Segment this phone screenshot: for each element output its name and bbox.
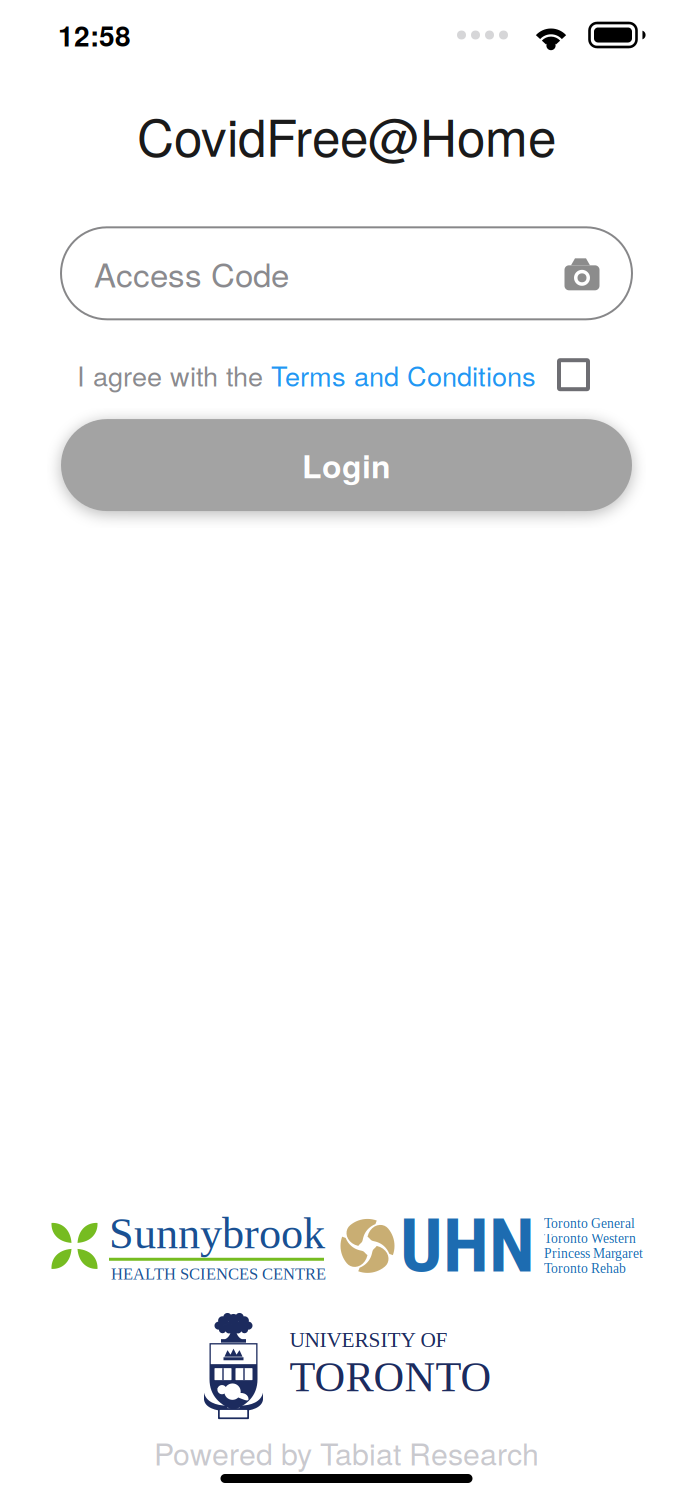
staticText: Powered by Tabiat Research <box>154 1431 539 1474</box>
staticText: Toronto Rehab <box>544 1261 626 1276</box>
staticText: Terms and Conditions <box>271 355 536 394</box>
staticText: HEALTH SCIENCES CENTRE <box>111 1265 326 1283</box>
staticText: Princess Margaret <box>544 1246 643 1261</box>
button[interactable]: Terms and Conditions <box>271 355 536 394</box>
staticText: Toronto Western <box>544 1231 636 1246</box>
staticText: Login <box>302 442 391 488</box>
staticText: TORONTO <box>289 1353 491 1400</box>
staticText: Sunnybrook <box>109 1209 325 1258</box>
staticText: Toronto General <box>544 1216 635 1231</box>
staticText: 12:58 <box>58 15 131 55</box>
staticText: UHN <box>400 1202 535 1290</box>
button[interactable]: Login <box>61 419 632 511</box>
staticText: Access Code <box>94 250 289 297</box>
staticText: CovidFree@Home <box>137 98 556 171</box>
staticText: I agree with the <box>77 355 271 394</box>
button[interactable]: Agree to terms and conditions <box>559 360 588 389</box>
button[interactable]: Scan access code with camera <box>563 257 601 290</box>
staticText: UNIVERSITY OF <box>289 1328 447 1351</box>
